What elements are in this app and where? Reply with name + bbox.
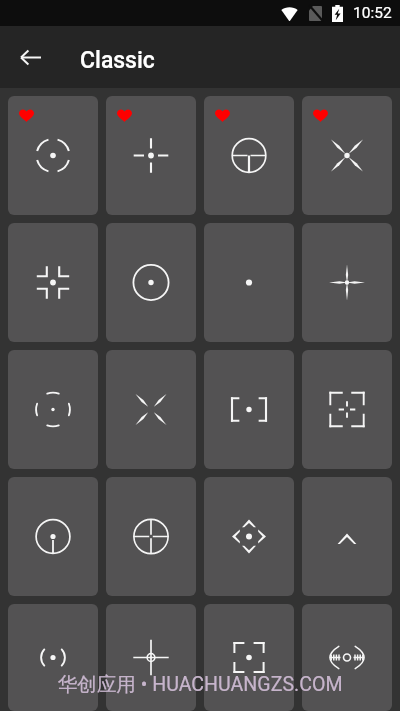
- button[interactable]: Reticle 13: [8, 477, 98, 596]
- button[interactable]: Reticle 6: [106, 223, 196, 342]
- button[interactable]: Reticle 19: [204, 604, 294, 711]
- button[interactable]: Reticle 20: [302, 604, 392, 711]
- button[interactable]: Reticle 18: [106, 604, 196, 711]
- staticText: 10:52: [353, 4, 392, 22]
- button[interactable]: Reticle 7: [204, 223, 294, 342]
- button[interactable]: Reticle 14: [106, 477, 196, 596]
- button[interactable]: Reticle 16: [302, 477, 392, 596]
- button[interactable]: Reticle 10: [106, 350, 196, 469]
- button[interactable]: Reticle 9: [8, 350, 98, 469]
- button[interactable]: Reticle 11: [204, 350, 294, 469]
- button[interactable]: Reticle 2: [106, 96, 196, 215]
- button[interactable]: Reticle 8: [302, 223, 392, 342]
- staticText: Classic: [80, 47, 155, 74]
- button[interactable]: Reticle 3: [204, 96, 294, 215]
- button[interactable]: Reticle 15: [204, 477, 294, 596]
- button[interactable]: Reticle 12: [302, 350, 392, 469]
- button[interactable]: Reticle 1: [8, 96, 98, 215]
- button[interactable]: Navigate up: [7, 34, 54, 81]
- button[interactable]: Reticle 5: [8, 223, 98, 342]
- button[interactable]: Reticle 17: [8, 604, 98, 711]
- staticText: 华创应用 • HUACHUANGZS.COM: [57, 672, 343, 697]
- button[interactable]: Reticle 4: [302, 96, 392, 215]
